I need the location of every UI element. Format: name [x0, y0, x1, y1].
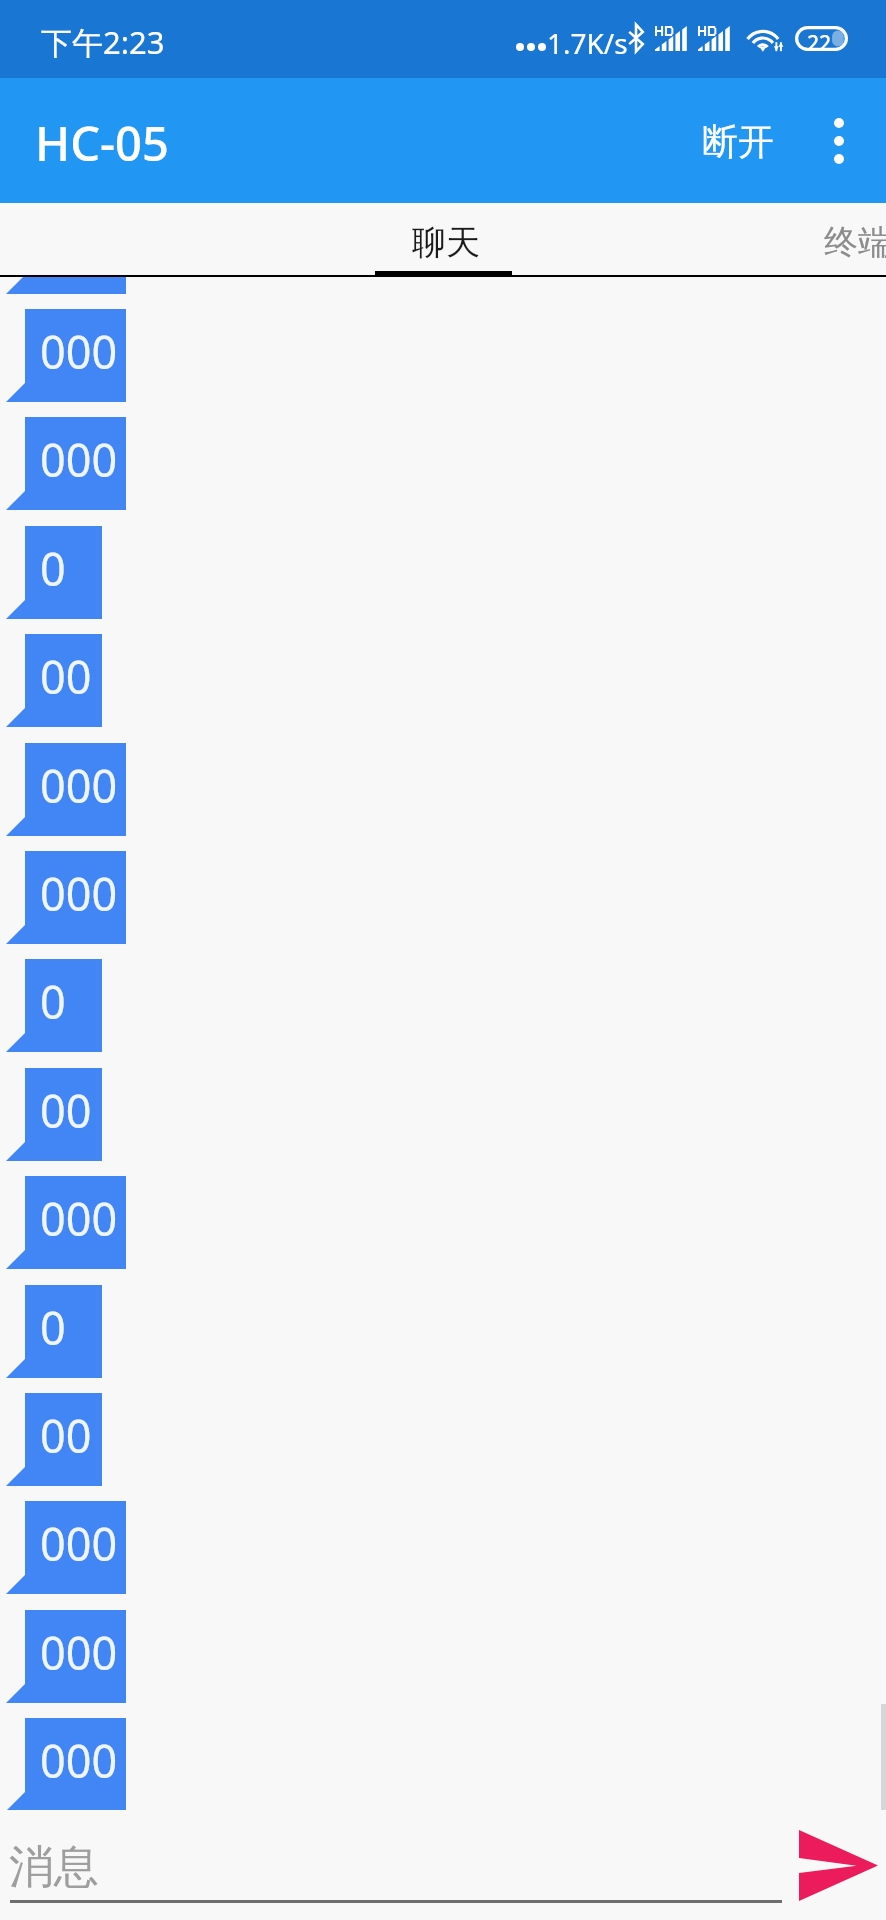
button[interactable]: 000	[6, 309, 126, 402]
staticText: 22	[807, 29, 832, 54]
staticText: 000	[40, 755, 118, 816]
button[interactable]: 断开	[684, 95, 792, 188]
button[interactable]: 000	[6, 417, 126, 510]
staticText: 00	[40, 646, 92, 707]
staticText: 终端	[824, 221, 886, 264]
button[interactable]: 0	[6, 526, 102, 619]
staticText: 000	[40, 321, 118, 382]
staticText: 消息	[9, 1839, 99, 1896]
staticText: 下午2:23	[41, 21, 165, 63]
button[interactable]: 000	[6, 851, 126, 944]
staticText: 000	[40, 1188, 118, 1249]
button[interactable]: 000	[6, 1176, 126, 1269]
staticText: 断开	[702, 119, 774, 164]
button[interactable]: 聊天	[240, 205, 652, 279]
button[interactable]: 终端	[652, 205, 886, 279]
button[interactable]: 00	[6, 1068, 102, 1161]
button[interactable]: 000	[6, 1718, 126, 1810]
staticText: HC-05	[35, 111, 169, 175]
staticText: 00	[40, 1080, 92, 1141]
staticText: 00	[40, 1405, 92, 1466]
button[interactable]: 000	[6, 1501, 126, 1594]
staticText: 1.7K/s	[547, 24, 628, 62]
button[interactable]: 000	[6, 743, 126, 836]
staticText: 0	[40, 1297, 66, 1358]
button[interactable]: 000	[6, 1610, 126, 1703]
staticText: 000	[40, 1622, 118, 1683]
button[interactable]: 0	[6, 959, 102, 1052]
staticText: 000	[40, 1513, 118, 1574]
staticText: 聊天	[412, 221, 480, 264]
button[interactable]: More options	[792, 83, 886, 199]
button[interactable]: Send	[799, 1830, 878, 1901]
button[interactable]: 000	[6, 277, 126, 294]
staticText: 000	[40, 429, 118, 490]
staticText: 0	[40, 538, 66, 599]
staticText: 000	[40, 863, 118, 924]
button[interactable]: 0	[6, 1285, 102, 1378]
button[interactable]: 00	[6, 1393, 102, 1486]
button[interactable]: 消息	[10, 1810, 782, 1920]
staticText: 0	[40, 971, 66, 1032]
button[interactable]: 00	[6, 634, 102, 727]
staticText: 000	[40, 1730, 118, 1791]
